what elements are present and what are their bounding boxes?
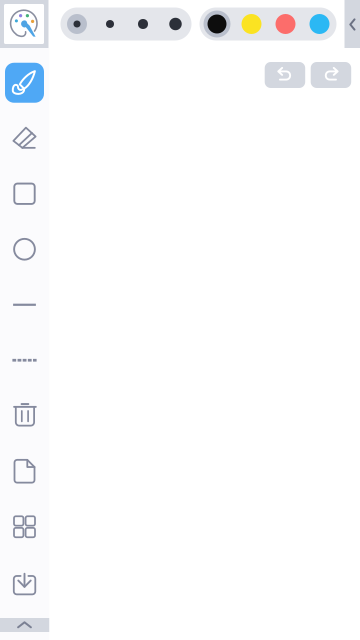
button[interactable]: New document — [0, 443, 49, 499]
button[interactable]: Redo — [311, 62, 351, 88]
button[interactable]: Save — [0, 554, 49, 610]
button[interactable]: Rectangle — [0, 166, 49, 221]
button[interactable]: Collapse tools — [0, 618, 49, 632]
button[interactable]: Ellipse — [0, 221, 49, 277]
button[interactable]: App — [0, 0, 48, 48]
button[interactable]: Brush — [0, 55, 49, 110]
button[interactable]: Dashed line — [0, 332, 49, 388]
button[interactable]: Templates — [0, 499, 49, 554]
button[interactable]: Collapse toolbar — [344, 0, 360, 48]
button[interactable]: Undo — [265, 62, 305, 88]
button[interactable]: Delete — [0, 388, 49, 443]
button[interactable]: Line — [0, 277, 49, 332]
button[interactable]: Eraser — [0, 110, 49, 166]
